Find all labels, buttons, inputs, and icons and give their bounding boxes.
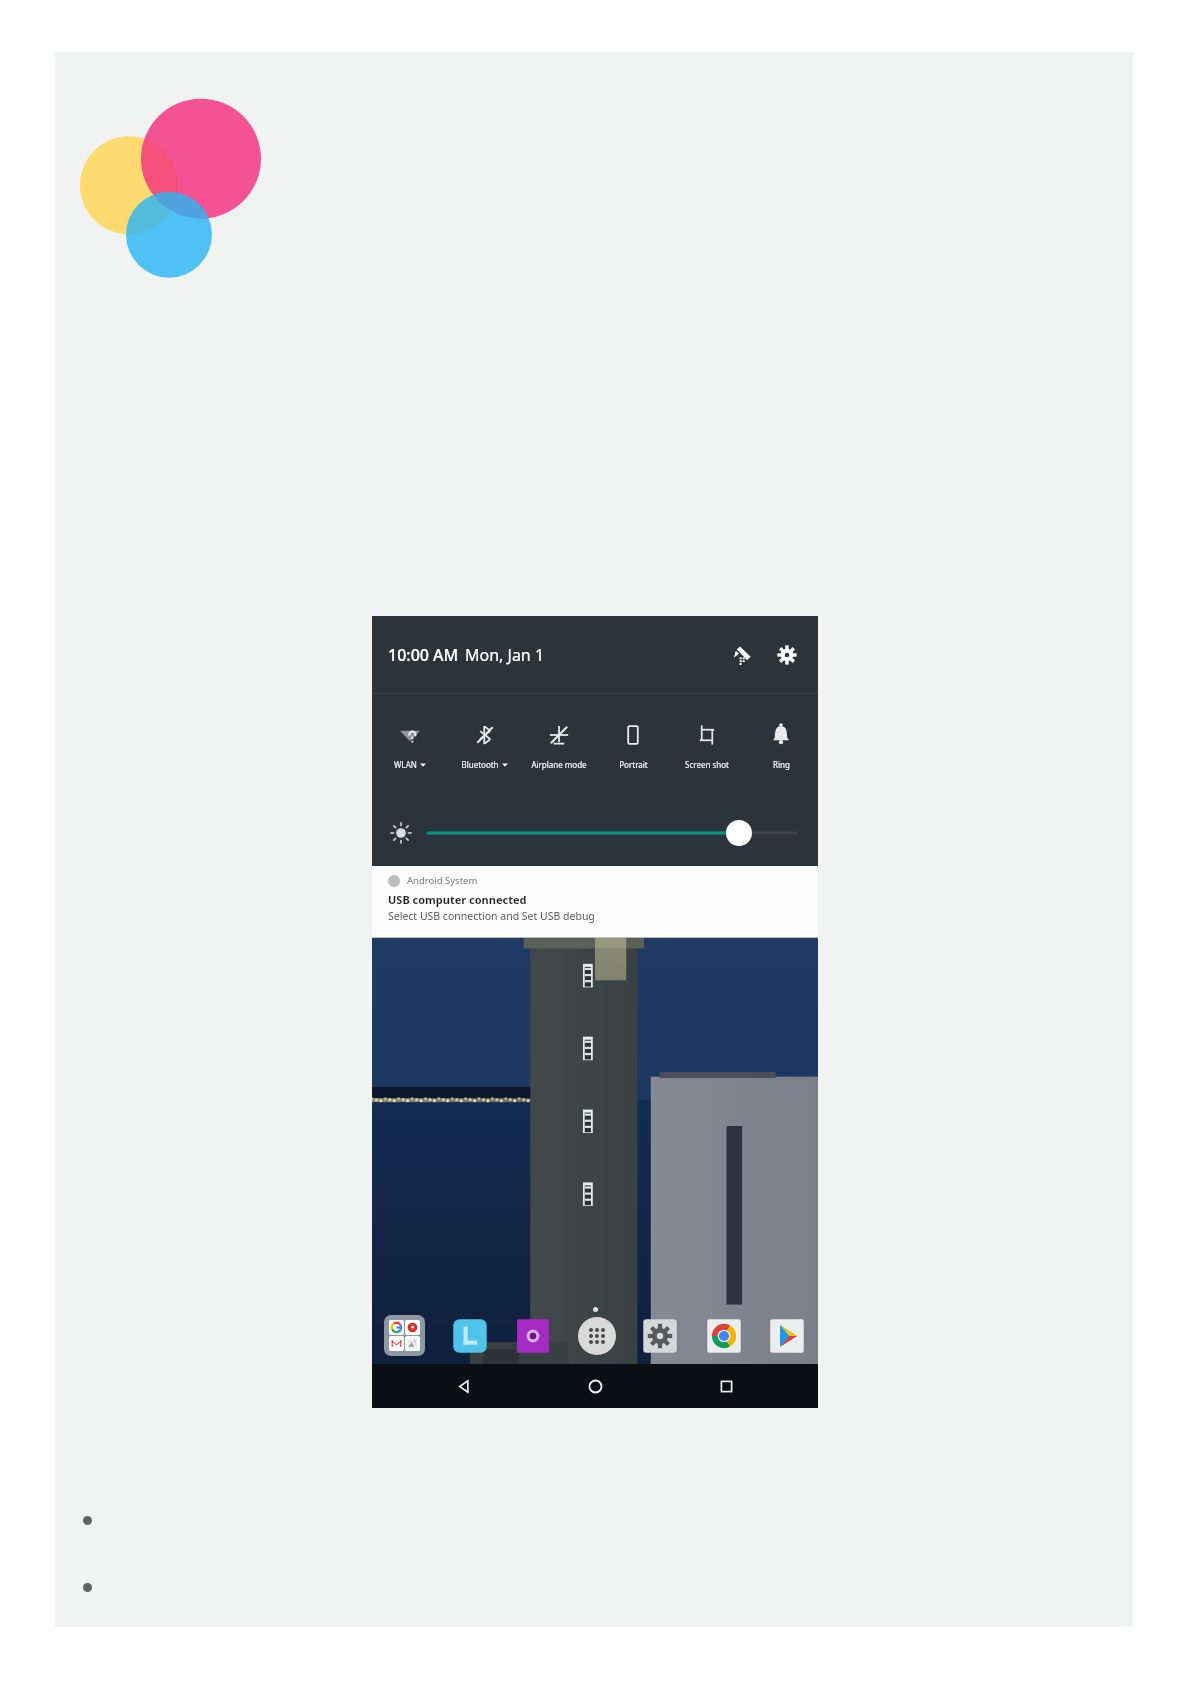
button[interactable]: App	[768, 1317, 806, 1355]
button[interactable]: All apps	[578, 1317, 616, 1355]
staticText: 10:00 AM	[388, 644, 459, 666]
button[interactable]: Home	[578, 1369, 612, 1403]
staticText: Screen shot	[685, 759, 729, 770]
button[interactable]: App	[451, 1317, 489, 1355]
staticText: Mon, Jan 1	[465, 644, 545, 666]
button[interactable]: Google folder	[384, 1315, 425, 1356]
button[interactable]: Airplane mode	[522, 694, 596, 799]
button[interactable]: Recents	[709, 1369, 743, 1403]
staticText: Bluetooth	[461, 759, 499, 770]
button[interactable]: App	[641, 1317, 679, 1355]
button[interactable]: Bluetooth	[447, 694, 522, 799]
button[interactable]: Screen shot	[670, 694, 744, 799]
button[interactable]: Settings	[770, 638, 804, 672]
staticText: Ring	[773, 759, 790, 770]
staticText: Airplane mode	[531, 759, 587, 770]
staticText: USB computer connected	[388, 892, 527, 907]
button[interactable]	[428, 819, 796, 847]
staticText: Android System	[407, 874, 478, 887]
staticText: Portrait	[619, 759, 648, 770]
button[interactable]: Android System	[372, 866, 818, 937]
staticText: Select USB connection and Set USB debug	[388, 909, 595, 923]
button[interactable]: Back	[447, 1369, 481, 1403]
button[interactable]: App	[705, 1317, 743, 1355]
staticText: WLAN	[394, 759, 417, 770]
button[interactable]: Portrait	[596, 694, 670, 799]
button[interactable]: Ring	[744, 694, 818, 799]
button[interactable]: Edit	[724, 638, 758, 672]
button[interactable]: App	[514, 1317, 552, 1355]
button[interactable]: WLAN	[372, 694, 447, 799]
